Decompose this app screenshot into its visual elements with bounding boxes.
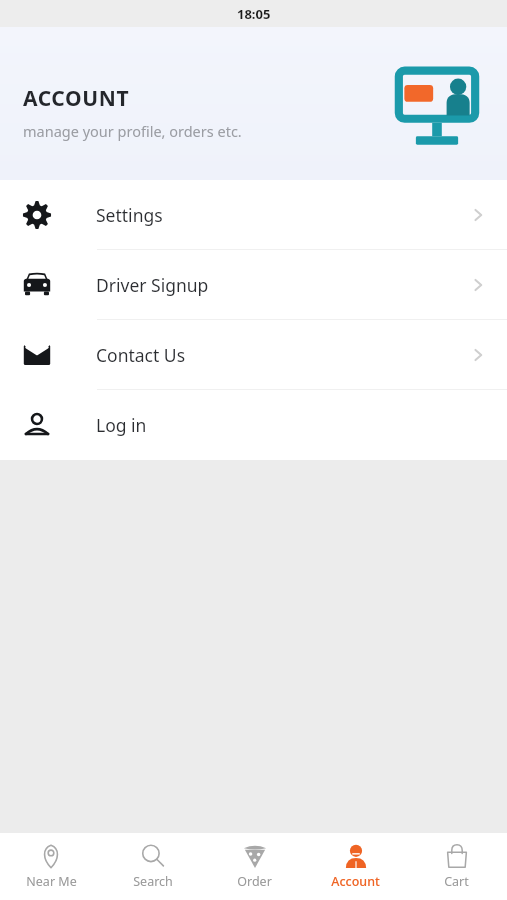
other: Log in: [22, 410, 52, 440]
staticText: Account: [331, 873, 380, 890]
other: Order: [242, 843, 268, 869]
staticText: manage your profile, orders etc.: [23, 121, 242, 141]
staticText: Search: [133, 873, 173, 890]
staticText: Near Me: [26, 873, 77, 890]
staticText: Driver Signup: [96, 273, 469, 297]
other: Search: [140, 843, 166, 869]
staticText: Settings: [96, 203, 469, 227]
staticText: Log in: [96, 413, 487, 437]
other: Account: [343, 843, 369, 869]
button[interactable]: Near Me: [0, 836, 102, 897]
other: Settings: [22, 200, 52, 230]
button[interactable]: Search: [102, 836, 204, 897]
staticText: ACCOUNT: [23, 84, 130, 113]
button[interactable]: Driver Signup: [0, 250, 507, 320]
other: Contact Us: [22, 340, 52, 370]
staticText: 18:05: [237, 5, 271, 23]
button[interactable]: Cart: [406, 836, 507, 897]
other: Driver Signup: [22, 270, 52, 300]
staticText: Contact Us: [96, 343, 469, 367]
other: Near Me: [38, 843, 64, 869]
staticText: Order: [237, 873, 272, 890]
button[interactable]: Log in: [0, 390, 507, 460]
button[interactable]: Settings: [0, 180, 507, 250]
button[interactable]: Account: [305, 836, 406, 897]
button[interactable]: Contact Us: [0, 320, 507, 390]
button[interactable]: Order: [204, 836, 305, 897]
other: Cart: [444, 843, 470, 869]
other: Account: [389, 64, 485, 148]
staticText: Cart: [444, 873, 469, 890]
